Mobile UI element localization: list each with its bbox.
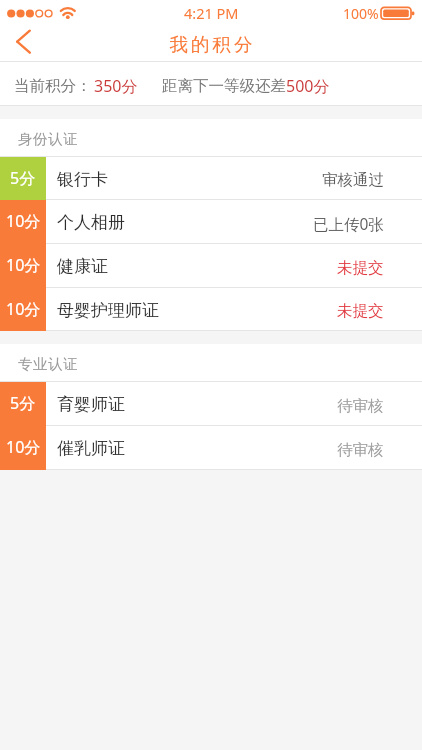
button[interactable]: 10分 [0,426,422,470]
staticText: 银行卡 [57,169,108,190]
staticText: 专业认证 [18,355,79,373]
staticText: 10分 [6,436,41,458]
staticText: 已上传0张 [313,213,384,234]
staticText: 4:21 PM [184,3,239,23]
staticText: 催乳师证 [57,438,125,459]
button[interactable]: Back [0,26,48,62]
staticText: 10分 [6,254,41,276]
button[interactable]: 10分 [0,200,422,244]
staticText: 未提交 [337,258,384,278]
button[interactable]: 10分 [0,288,422,331]
button[interactable]: 5分 [0,382,422,426]
staticText: 500分 [286,75,330,97]
staticText: 待审核 [337,440,384,460]
staticText: 当前积分： [14,76,92,96]
button[interactable]: 10分 [0,244,422,288]
staticText: 距离下一等级还差 [162,76,286,96]
staticText: 10分 [6,298,41,320]
staticText: 育婴师证 [57,394,125,415]
staticText: 健康证 [57,256,108,277]
staticText: 待审核 [337,396,384,416]
staticText: 身份认证 [18,130,79,148]
button[interactable]: 5分 [0,157,422,200]
staticText: 母婴护理师证 [57,300,159,321]
staticText: 100% [343,4,379,23]
staticText: 我的积分 [168,33,254,56]
staticText: 350分 [94,75,138,97]
staticText: 5分 [10,392,36,414]
staticText: 个人相册 [57,212,125,233]
staticText: 10分 [6,210,41,232]
staticText: 5分 [10,167,36,189]
staticText: 未提交 [337,301,384,321]
staticText: 审核通过 [322,170,384,190]
